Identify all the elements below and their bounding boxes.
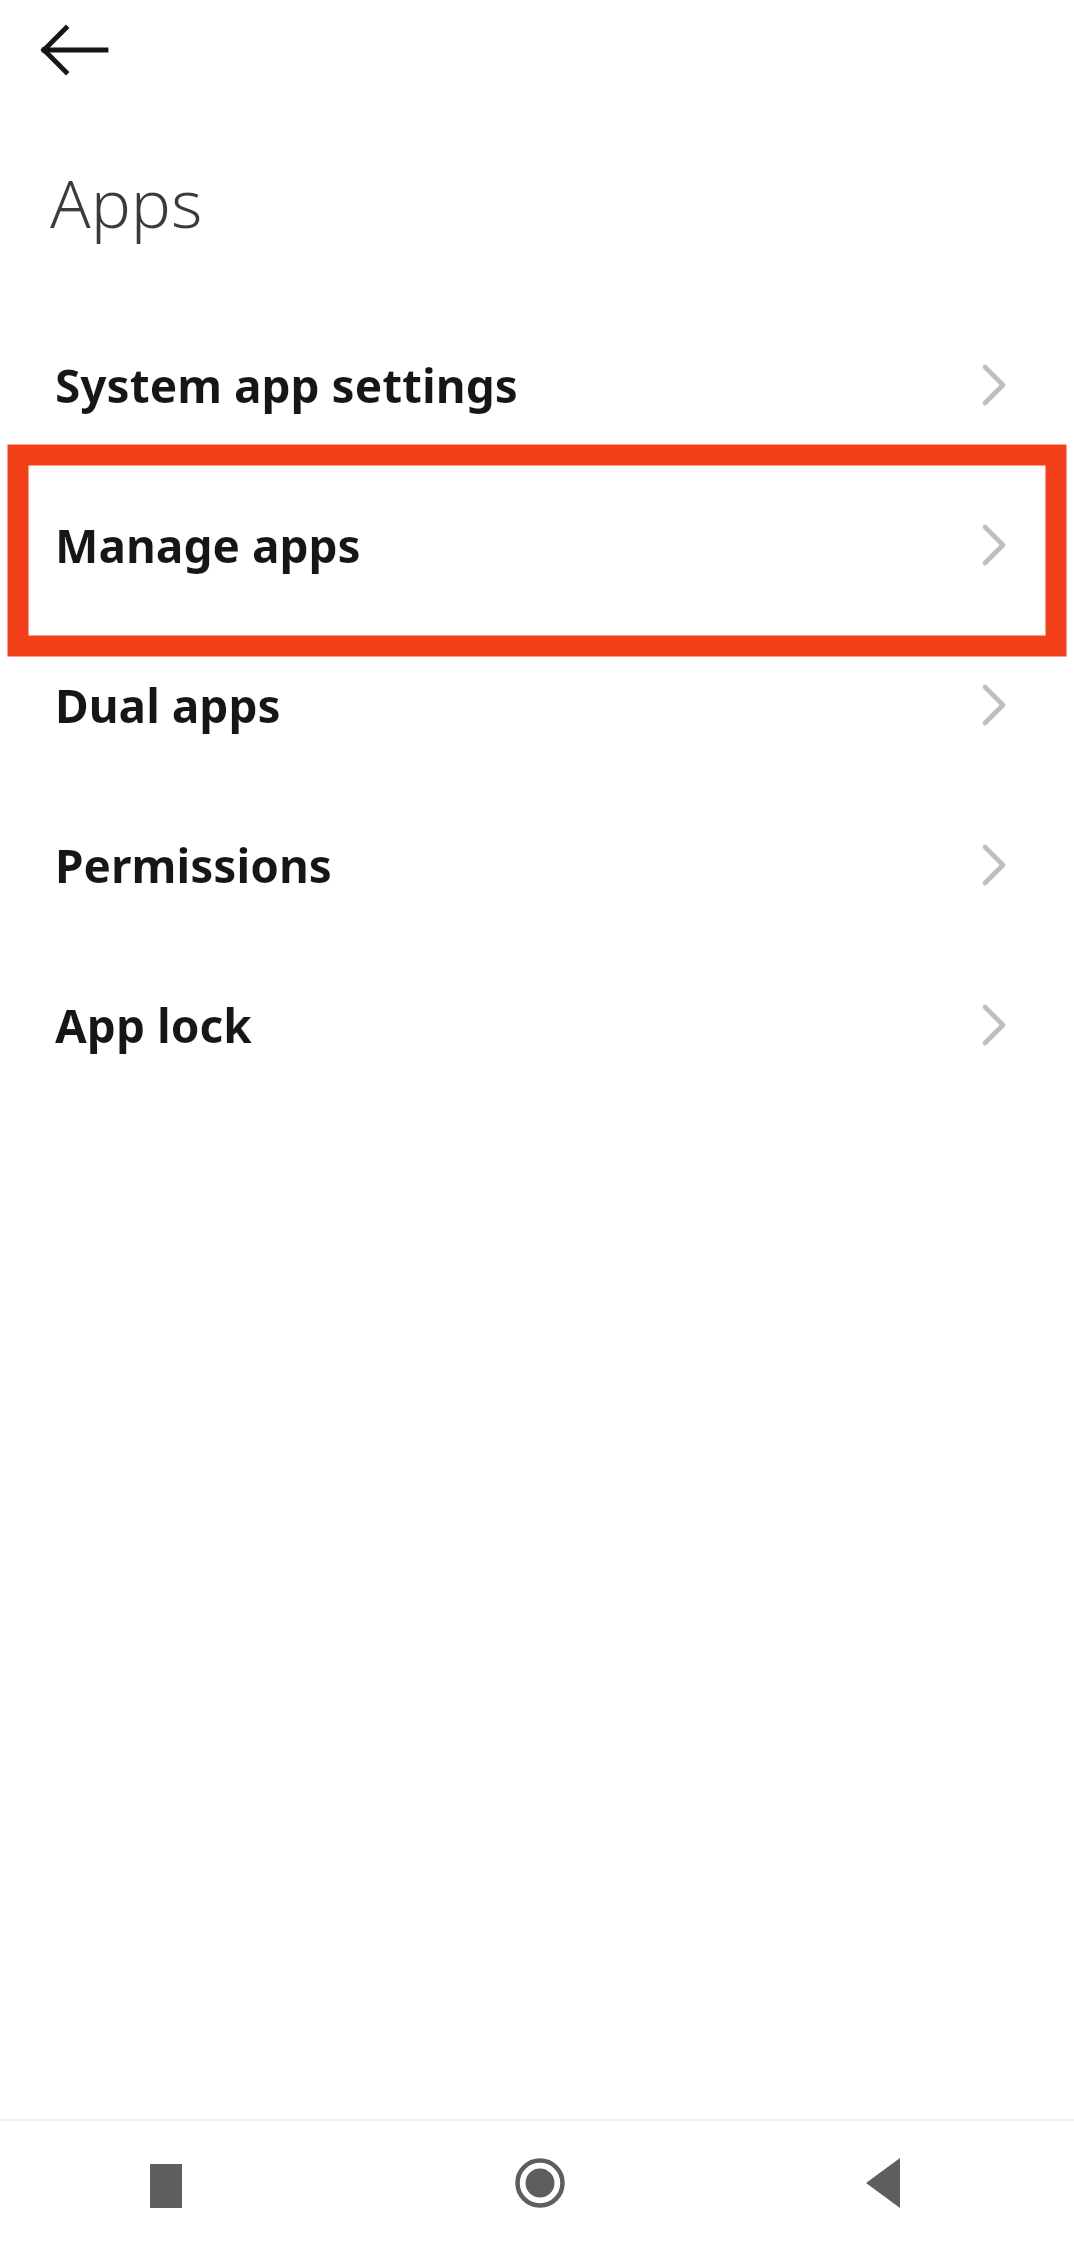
staticText: Apps [50, 156, 203, 247]
button[interactable]: Home [492, 2135, 588, 2231]
button[interactable]: Back [27, 2, 123, 98]
staticText: Dual apps [55, 674, 281, 737]
button[interactable]: Permissions [0, 785, 1074, 945]
button[interactable]: App lock [0, 945, 1074, 1105]
button[interactable]: Dual apps [0, 625, 1074, 785]
button[interactable]: Recent apps [118, 2138, 214, 2234]
staticText: Permissions [55, 834, 332, 897]
staticText: Manage apps [55, 514, 361, 577]
button[interactable]: System app settings [0, 305, 1074, 465]
staticText: System app settings [55, 354, 518, 417]
button[interactable]: Back [837, 2135, 933, 2231]
button[interactable]: Manage apps [0, 465, 1074, 625]
staticText: App lock [55, 994, 252, 1057]
